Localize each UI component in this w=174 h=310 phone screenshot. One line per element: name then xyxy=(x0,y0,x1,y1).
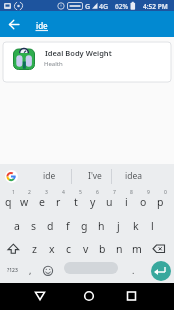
staticText: ide xyxy=(43,170,56,182)
button[interactable] xyxy=(6,17,22,33)
staticText: v xyxy=(83,242,89,256)
button[interactable]: i xyxy=(118,191,135,213)
staticText: 1 xyxy=(12,189,15,196)
button[interactable]: e xyxy=(33,191,50,213)
button[interactable]: idea xyxy=(121,169,145,183)
staticText: g xyxy=(81,219,88,233)
button[interactable]: l xyxy=(144,215,161,237)
staticText: idea xyxy=(125,170,142,182)
button[interactable] xyxy=(30,286,50,306)
staticText: x xyxy=(49,242,55,256)
button[interactable]: n xyxy=(111,238,128,260)
staticText: c xyxy=(66,242,72,256)
staticText: 4G xyxy=(99,2,109,11)
staticText: s xyxy=(31,219,37,233)
button[interactable] xyxy=(3,42,171,82)
button[interactable]: o xyxy=(135,191,152,213)
staticText: 0 xyxy=(164,189,167,196)
staticText: 6 xyxy=(96,189,99,196)
button[interactable] xyxy=(64,262,118,274)
staticText: 7 xyxy=(113,189,116,196)
button[interactable]: f xyxy=(59,215,76,237)
button[interactable] xyxy=(0,235,26,258)
button[interactable]: ide xyxy=(34,19,50,31)
button[interactable]: s xyxy=(25,215,42,237)
button[interactable]: , xyxy=(24,263,36,277)
staticText: 4:52 PM xyxy=(143,2,168,11)
button[interactable]: . xyxy=(127,263,139,277)
staticText: ide xyxy=(36,20,48,31)
button[interactable]: p xyxy=(152,191,169,213)
button[interactable]: ide xyxy=(37,169,61,183)
staticText: p xyxy=(157,195,164,209)
staticText: r xyxy=(56,195,61,209)
button[interactable]: w xyxy=(16,191,33,213)
button[interactable]: q xyxy=(0,191,17,213)
button[interactable]: c xyxy=(60,238,77,260)
staticText: n xyxy=(116,242,123,256)
staticText: t xyxy=(74,195,78,209)
staticText: f xyxy=(66,219,70,233)
button[interactable]: r xyxy=(50,191,67,213)
staticText: m xyxy=(132,242,142,256)
button[interactable]: k xyxy=(127,215,144,237)
staticText: z xyxy=(32,242,37,256)
button[interactable]: ?123 xyxy=(3,263,21,277)
button[interactable] xyxy=(151,261,171,281)
staticText: 3 xyxy=(45,189,48,196)
staticText: q xyxy=(5,195,12,209)
staticText: 9 xyxy=(147,189,150,196)
button[interactable]: h xyxy=(93,215,110,237)
staticText: h xyxy=(98,219,105,233)
staticText: a xyxy=(14,219,20,233)
button[interactable] xyxy=(121,286,141,306)
button[interactable]: x xyxy=(43,238,60,260)
button[interactable]: z xyxy=(26,238,43,260)
button[interactable]: a xyxy=(8,215,25,237)
staticText: I've xyxy=(88,170,102,182)
staticText: , xyxy=(29,264,32,276)
staticText: b xyxy=(99,242,106,256)
button[interactable]: m xyxy=(128,238,145,260)
staticText: i xyxy=(125,195,128,209)
staticText: u xyxy=(106,195,113,209)
staticText: d xyxy=(47,219,54,233)
staticText: l xyxy=(151,219,154,233)
staticText: 62% xyxy=(115,2,128,11)
button[interactable]: j xyxy=(110,215,127,237)
staticText: 2 xyxy=(28,189,31,196)
staticText: Ideal Body Weight xyxy=(45,48,112,58)
staticText: w xyxy=(20,195,29,209)
button[interactable]: d xyxy=(42,215,59,237)
staticText: G xyxy=(85,2,91,11)
staticText: k xyxy=(133,219,139,233)
button[interactable]: y xyxy=(84,191,101,213)
staticText: y xyxy=(90,195,96,209)
button[interactable]: I've xyxy=(83,169,107,183)
button[interactable] xyxy=(148,235,174,258)
staticText: 8 xyxy=(130,189,133,196)
button[interactable]: v xyxy=(77,238,94,260)
button[interactable]: b xyxy=(94,238,111,260)
button[interactable] xyxy=(40,259,56,282)
staticText: ?123 xyxy=(7,267,18,274)
staticText: Health xyxy=(44,60,63,68)
button[interactable]: g xyxy=(76,215,93,237)
button[interactable] xyxy=(79,286,99,306)
staticText: 4 xyxy=(62,189,65,196)
staticText: 5 xyxy=(79,189,82,196)
button[interactable]: u xyxy=(101,191,118,213)
button[interactable]: t xyxy=(67,191,84,213)
staticText: o xyxy=(140,195,147,209)
staticText: . xyxy=(132,264,135,276)
staticText: j xyxy=(117,219,120,233)
button[interactable] xyxy=(5,170,18,183)
staticText: e xyxy=(39,195,45,209)
